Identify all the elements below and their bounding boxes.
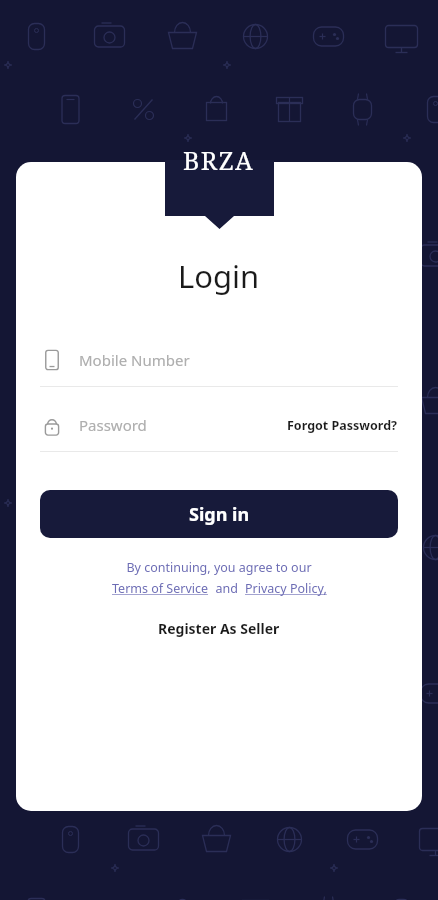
staticText: and (209, 580, 245, 597)
button[interactable]: Mobile Number (40, 344, 398, 376)
staticText: Mobile Number (79, 350, 190, 370)
button[interactable]: Password (40, 409, 287, 441)
staticText: Forgot Password? (287, 417, 398, 434)
staticText: By continuing, you agree to our (126, 559, 312, 576)
button[interactable]: Sign in (40, 490, 398, 538)
staticText: Password (79, 415, 147, 435)
staticText: Login (178, 255, 260, 297)
staticText: Sign in (189, 502, 250, 527)
staticText: Privacy Policy, (245, 580, 327, 597)
staticText: Register As Seller (158, 619, 280, 638)
staticText: BRZA (183, 143, 255, 177)
button[interactable]: Privacy Policy, (245, 580, 327, 597)
staticText: Terms of Service (112, 580, 209, 597)
button[interactable]: Terms of Service (112, 580, 209, 597)
button[interactable]: Register As Seller (150, 615, 288, 642)
button[interactable]: Forgot Password? (287, 413, 398, 438)
